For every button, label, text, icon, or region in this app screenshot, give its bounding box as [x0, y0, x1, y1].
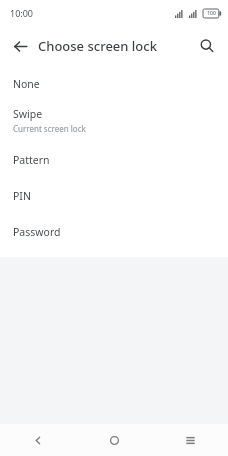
staticText: PIN	[13, 189, 31, 203]
staticText: 10:00	[10, 7, 34, 19]
button[interactable]: Pattern	[0, 142, 228, 178]
button[interactable]: Home	[76, 424, 152, 456]
button[interactable]: Recent apps	[152, 424, 228, 456]
button[interactable]: Swipe	[0, 98, 228, 142]
button[interactable]: None	[0, 70, 228, 98]
staticText: Pattern	[13, 153, 50, 167]
button[interactable]: Search	[191, 30, 223, 62]
staticText: 100	[207, 10, 216, 17]
staticText: Current screen lock	[13, 123, 86, 134]
staticText: None	[13, 77, 40, 91]
staticText: Password	[13, 225, 61, 239]
button[interactable]: PIN	[0, 178, 228, 214]
staticText: Choose screen lock	[38, 37, 157, 55]
button[interactable]: Password	[0, 214, 228, 250]
staticText: Swipe	[13, 107, 43, 121]
button[interactable]: Back	[0, 424, 76, 456]
button[interactable]: Back	[4, 30, 36, 62]
